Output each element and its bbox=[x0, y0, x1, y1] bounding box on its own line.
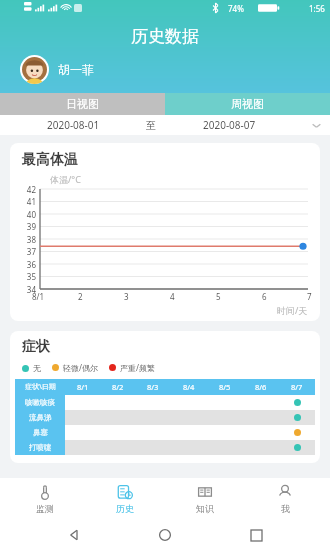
button[interactable]: 周视图 bbox=[165, 93, 330, 115]
staticText: 时间/天 bbox=[277, 304, 308, 316]
staticText: 42 bbox=[26, 184, 36, 195]
staticText: 日视图 bbox=[66, 97, 99, 111]
staticText: 2 bbox=[78, 291, 83, 302]
staticText: 8/7 bbox=[291, 382, 303, 392]
button[interactable]: 流鼻涕 bbox=[15, 410, 315, 425]
staticText: 体温/°C bbox=[50, 173, 81, 185]
button[interactable]: 咳嗽咳痰 bbox=[15, 395, 315, 410]
staticText: 知识 bbox=[196, 503, 214, 514]
staticText: 历史数据 bbox=[131, 26, 199, 47]
staticText: 流鼻涕 bbox=[29, 413, 52, 422]
staticText: 打喷嚏 bbox=[29, 443, 52, 452]
staticText: 4 bbox=[170, 291, 175, 302]
staticText: 周视图 bbox=[231, 97, 264, 111]
staticText: 我 bbox=[281, 503, 290, 514]
staticText: 2020-08-01 bbox=[47, 118, 100, 132]
staticText: 3 bbox=[124, 291, 129, 302]
staticText: 8/1 bbox=[77, 382, 89, 392]
staticText: 症状 bbox=[22, 338, 50, 356]
staticText: 8/6 bbox=[255, 382, 267, 392]
button[interactable]: 知识 bbox=[170, 481, 240, 517]
button[interactable]: Home bbox=[148, 520, 182, 550]
button[interactable]: 鼻塞 bbox=[15, 425, 315, 440]
staticText: 38 bbox=[26, 234, 36, 245]
button[interactable]: 打喷嚏 bbox=[15, 440, 315, 455]
staticText: 36 bbox=[26, 259, 36, 270]
staticText: 咳嗽咳痰 bbox=[25, 398, 55, 407]
staticText: 2020-08-07 bbox=[203, 118, 256, 132]
staticText: 37 bbox=[26, 246, 36, 257]
staticText: 历史 bbox=[116, 503, 134, 514]
staticText: 8/2 bbox=[112, 382, 124, 392]
staticText: 轻微/偶尔 bbox=[63, 362, 98, 373]
staticText: 无 bbox=[33, 363, 41, 373]
staticText: 6 bbox=[262, 291, 267, 302]
button[interactable]: Back bbox=[57, 520, 91, 550]
staticText: 严重/频繁 bbox=[120, 362, 155, 373]
staticText: 40 bbox=[26, 209, 36, 220]
staticText: 监测 bbox=[36, 503, 54, 514]
staticText: 最高体温 bbox=[22, 151, 78, 169]
staticText: 胡一菲 bbox=[58, 62, 94, 77]
button[interactable]: 胡一菲 bbox=[20, 55, 94, 84]
staticText: 症状\日期 bbox=[25, 382, 56, 392]
staticText: 鼻塞 bbox=[33, 428, 48, 437]
staticText: 8/4 bbox=[183, 382, 195, 392]
staticText: 8/1 bbox=[32, 291, 45, 302]
staticText: 5 bbox=[216, 291, 221, 302]
staticText: 8/5 bbox=[219, 382, 231, 392]
staticText: 41 bbox=[26, 196, 36, 207]
staticText: 39 bbox=[26, 221, 36, 232]
button[interactable]: 我 bbox=[250, 481, 320, 517]
other: Expand date range bbox=[302, 115, 330, 135]
button[interactable]: 2020-08-01 bbox=[0, 115, 330, 135]
staticText: 至 bbox=[146, 119, 156, 132]
button[interactable]: 日视图 bbox=[0, 93, 165, 115]
button[interactable]: Recents bbox=[239, 520, 273, 550]
staticText: 35 bbox=[26, 271, 36, 282]
staticText: 8/3 bbox=[147, 382, 159, 392]
staticText: 74% bbox=[228, 3, 244, 14]
staticText: 1:56 bbox=[309, 3, 325, 14]
staticText: 7 bbox=[307, 291, 312, 302]
button[interactable]: 历史 bbox=[90, 481, 160, 517]
staticText: 34 bbox=[26, 284, 36, 295]
button[interactable]: 监测 bbox=[10, 481, 80, 517]
